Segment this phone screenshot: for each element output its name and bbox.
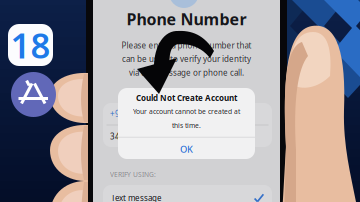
staticText: OK xyxy=(180,143,193,155)
staticText: Could Not Create Account xyxy=(136,92,237,103)
staticText: 18 xyxy=(10,22,50,68)
staticText: this time. xyxy=(172,121,201,130)
staticText: +9 xyxy=(110,108,120,119)
staticText: Phone Number xyxy=(126,8,246,30)
staticText: Please enter a phone number that xyxy=(121,40,251,51)
staticText: Your account cannot be created at xyxy=(133,107,240,116)
staticText: via text message or phone call. xyxy=(129,67,244,78)
staticText: 34 xyxy=(110,131,120,142)
button[interactable]: Text message xyxy=(103,185,272,202)
staticText: VERIFY USING: xyxy=(110,170,156,179)
staticText: Text message xyxy=(111,193,162,202)
staticText: can be used to verify your identity xyxy=(122,54,251,64)
button[interactable]: OK xyxy=(118,137,255,160)
